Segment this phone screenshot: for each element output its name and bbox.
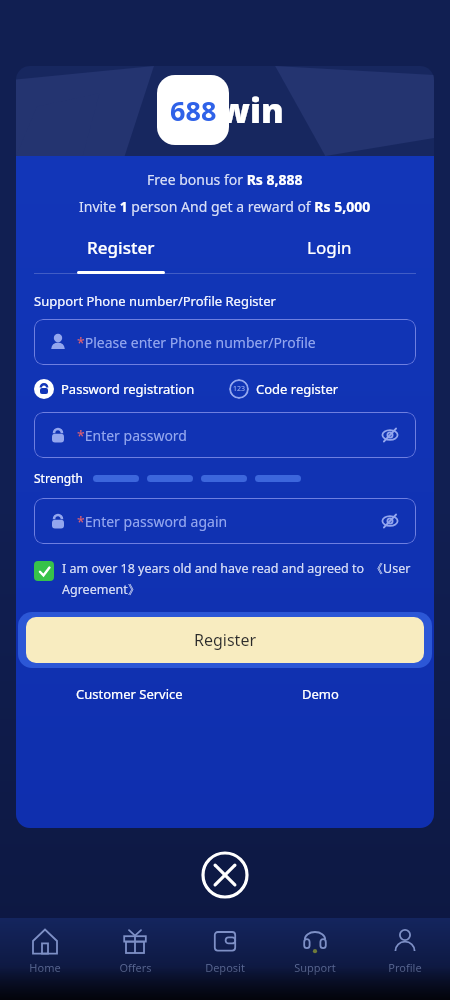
staticText: 123 bbox=[233, 384, 246, 394]
button[interactable]: Deposit bbox=[180, 926, 270, 1000]
button[interactable]: Register bbox=[16, 236, 225, 274]
button[interactable]: Profile bbox=[360, 926, 450, 1000]
staticText: Deposit bbox=[205, 960, 245, 975]
button[interactable]: I am over 18 years old and have read and… bbox=[34, 560, 416, 597]
staticText: Demo bbox=[302, 685, 339, 703]
staticText: win bbox=[219, 87, 284, 133]
button[interactable]: Login bbox=[225, 236, 434, 274]
staticText: Offers bbox=[119, 960, 152, 975]
button[interactable]: Show password bbox=[378, 423, 402, 447]
staticText: Support Phone number/Profile Register bbox=[34, 292, 276, 310]
button[interactable]: Demo bbox=[225, 685, 416, 703]
staticText: Password registration bbox=[61, 380, 195, 398]
staticText: Profile bbox=[388, 960, 422, 975]
staticText: Home bbox=[29, 960, 61, 975]
button[interactable]: 123 bbox=[229, 379, 339, 399]
staticText: Invite 1 person And get a reward of Rs 5… bbox=[79, 197, 371, 216]
staticText: Support bbox=[294, 960, 336, 975]
staticText: Login bbox=[307, 236, 352, 259]
staticText: Register bbox=[87, 236, 155, 259]
button[interactable]: *Please enter Phone number/Profile bbox=[34, 319, 416, 365]
staticText: *Enter password again bbox=[77, 512, 228, 531]
button[interactable]: Customer Service bbox=[34, 685, 225, 703]
staticText: Register bbox=[194, 629, 257, 651]
staticText: 688 bbox=[170, 92, 217, 129]
button[interactable]: Close bbox=[200, 850, 250, 900]
button[interactable]: Show password bbox=[378, 509, 402, 533]
button[interactable]: Password registration bbox=[34, 379, 195, 399]
button[interactable]: Register bbox=[26, 617, 424, 663]
button[interactable]: Support bbox=[270, 926, 360, 1000]
button[interactable]: Offers bbox=[90, 926, 180, 1000]
staticText: Free bonus for Rs 8,888 bbox=[147, 170, 303, 189]
staticText: *Please enter Phone number/Profile bbox=[77, 333, 316, 352]
button[interactable]: Home bbox=[0, 926, 90, 1000]
button[interactable]: *Enter password bbox=[34, 412, 416, 458]
staticText: *Enter password bbox=[77, 426, 187, 445]
staticText: Code register bbox=[256, 380, 339, 398]
staticText: Customer Service bbox=[76, 685, 183, 703]
staticText: Strength bbox=[34, 470, 83, 486]
staticText: I am over 18 years old and have read and… bbox=[62, 560, 416, 597]
button[interactable]: *Enter password again bbox=[34, 498, 416, 544]
